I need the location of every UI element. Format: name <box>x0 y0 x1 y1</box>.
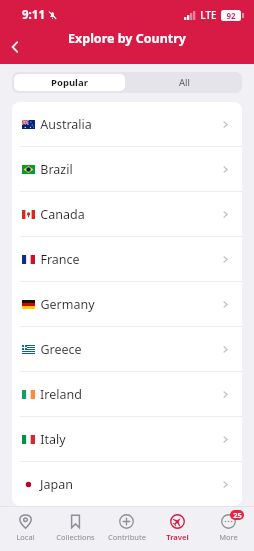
staticText: All <box>179 76 190 89</box>
staticText: Popular <box>51 76 88 89</box>
staticText: Australia <box>40 116 92 133</box>
staticText: Japan <box>40 476 73 493</box>
button[interactable]: Greece <box>12 327 242 371</box>
staticText: Collections <box>56 532 95 542</box>
staticText: Contribute <box>108 532 146 542</box>
staticText: More <box>219 532 238 542</box>
button[interactable]: All <box>127 72 242 93</box>
staticText: Greece <box>40 341 82 358</box>
button[interactable]: 25 <box>203 507 254 551</box>
button[interactable]: Popular <box>14 74 125 91</box>
button[interactable]: Travel <box>152 507 203 551</box>
staticText: Local <box>16 532 35 542</box>
button[interactable]: Italy <box>12 417 242 461</box>
button[interactable]: Back <box>0 32 30 62</box>
button[interactable]: France <box>12 237 242 281</box>
staticText: 9:11 <box>22 7 45 23</box>
staticText: Italy <box>40 431 66 448</box>
staticText: Travel <box>166 532 189 542</box>
button[interactable]: Contribute <box>101 507 152 551</box>
button[interactable]: Japan <box>12 462 242 506</box>
button[interactable]: Brazil <box>12 147 242 191</box>
staticText: France <box>40 251 80 268</box>
staticText: 25 <box>233 510 242 520</box>
staticText: Ireland <box>40 386 82 403</box>
staticText: Explore by Country <box>68 30 186 47</box>
staticText: Germany <box>40 296 95 313</box>
staticText: 92 <box>226 10 236 21</box>
staticText: Brazil <box>40 161 73 178</box>
button[interactable]: Collections <box>50 507 101 551</box>
button[interactable]: Local <box>0 507 50 551</box>
staticText: Canada <box>40 206 85 223</box>
button[interactable]: Australia <box>12 102 242 146</box>
button[interactable]: Canada <box>12 192 242 236</box>
staticText: LTE <box>200 8 217 22</box>
button[interactable]: Ireland <box>12 372 242 416</box>
button[interactable]: Germany <box>12 282 242 326</box>
